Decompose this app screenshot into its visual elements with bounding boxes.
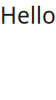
- staticText: Hello: [0, 0, 56, 30]
